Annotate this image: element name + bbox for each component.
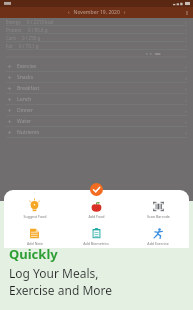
staticText: › — [185, 63, 187, 70]
staticText: Dinner — [17, 107, 34, 114]
staticText: › — [185, 43, 187, 50]
staticText: Energy — [6, 19, 21, 25]
button[interactable]: Nutrients — [0, 127, 193, 138]
button[interactable]: Carb — [0, 34, 193, 42]
staticText: › — [185, 107, 187, 114]
staticText: Add Note — [27, 241, 43, 246]
button[interactable]: Add Exercise — [127, 224, 189, 248]
staticText: 0 / 85.6 g — [28, 27, 48, 33]
staticText: 0 / 2213 kcal — [27, 19, 54, 25]
button[interactable]: Fat — [0, 42, 193, 50]
staticText: Nutrients — [17, 129, 40, 136]
staticText: › — [185, 96, 187, 103]
staticText: › — [185, 118, 187, 125]
staticText: Protein — [6, 27, 22, 33]
button[interactable]: Suggest Food — [4, 197, 65, 221]
button[interactable]: Add Biometrics — [65, 224, 127, 248]
staticText: Water — [17, 118, 32, 125]
button[interactable]: Dinner — [0, 105, 193, 116]
staticText: Log Your Meals, — [9, 265, 99, 281]
button[interactable]: Close quick actions — [90, 183, 103, 196]
button[interactable]: Lunch — [0, 94, 193, 105]
staticText: 0 / 250 g — [22, 35, 41, 41]
button[interactable]: Scan Barcode — [127, 197, 189, 221]
staticText: Fat — [6, 43, 13, 49]
staticText: › — [185, 27, 187, 34]
staticText: Add Biometrics — [83, 241, 109, 246]
staticText: Exercise and More — [9, 282, 113, 298]
staticText: ‹ November 19, 2020 › — [68, 9, 126, 16]
button[interactable]: Water — [0, 116, 193, 127]
staticText: Carb — [6, 35, 16, 41]
staticText: Exercise — [17, 63, 37, 70]
staticText: Breakfast — [17, 85, 40, 92]
staticText: Snacks — [17, 74, 34, 81]
button[interactable]: Protein — [0, 26, 193, 34]
staticText: › — [185, 85, 187, 92]
staticText: Lunch — [17, 96, 32, 103]
button[interactable]: More options — [184, 10, 190, 16]
staticText: Scan Barcode — [147, 214, 170, 219]
button[interactable]: Breakfast — [0, 83, 193, 94]
staticText: › — [185, 35, 187, 42]
staticText: › — [185, 129, 187, 136]
button[interactable]: Energy — [0, 18, 193, 26]
staticText: › — [185, 74, 187, 81]
staticText: Quickly — [9, 245, 58, 263]
staticText: › — [185, 19, 187, 26]
button[interactable]: Exercise — [0, 61, 193, 72]
button[interactable]: Snacks — [0, 72, 193, 83]
staticText: Add Food — [88, 214, 105, 219]
staticText: 0 / 70.1 g — [19, 43, 39, 49]
button[interactable]: Add Note — [4, 224, 65, 248]
staticText: Add Exercise — [147, 241, 169, 246]
button[interactable]: Add Food — [65, 197, 127, 221]
staticText: Suggest Food — [23, 214, 47, 219]
